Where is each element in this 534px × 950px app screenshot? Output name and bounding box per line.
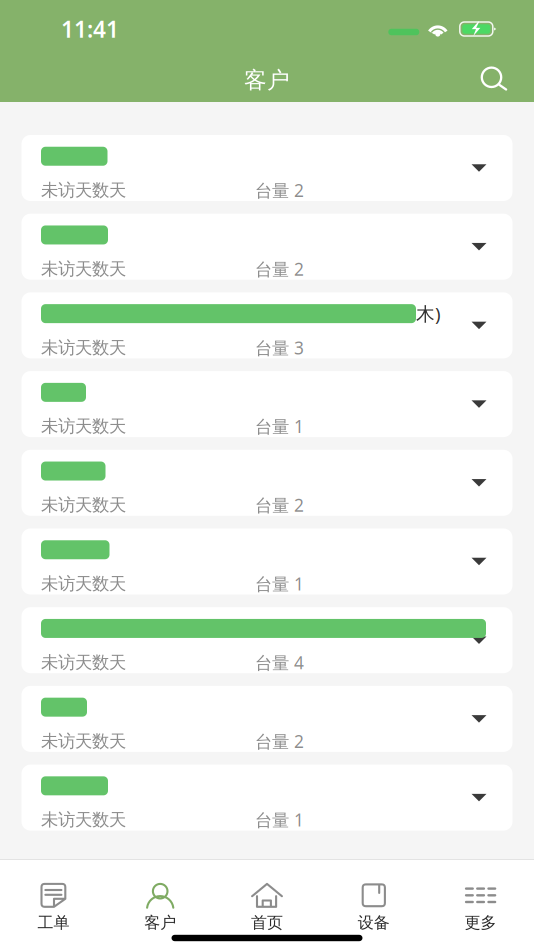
button[interactable]: 未访天数天 <box>21 528 512 594</box>
button[interactable]: 未访天数天 <box>21 607 512 673</box>
button[interactable]: 木) <box>21 292 512 358</box>
button[interactable]: 未访天数天 <box>21 686 512 752</box>
staticText: 台量 2 <box>255 179 304 202</box>
staticText: 更多 <box>465 913 497 932</box>
staticText: 台量 2 <box>255 730 304 753</box>
button[interactable]: 未访天数天 <box>21 135 512 201</box>
button[interactable]: 客户 <box>107 883 214 932</box>
staticText: 未访天数天 <box>41 730 126 752</box>
staticText: 未访天数天 <box>41 652 126 673</box>
button[interactable]: 设备 <box>320 883 427 932</box>
button[interactable]: 首页 <box>214 883 320 932</box>
staticText: 客户 <box>244 66 290 94</box>
staticText: 台量 3 <box>255 336 304 359</box>
staticText: 未访天数天 <box>41 809 126 830</box>
staticText: 木) <box>416 301 441 326</box>
button[interactable]: 未访天数天 <box>21 371 512 437</box>
staticText: 设备 <box>358 913 390 932</box>
staticText: 客户 <box>144 913 176 932</box>
button[interactable]: 未访天数天 <box>21 214 512 280</box>
staticText: 未访天数天 <box>41 573 126 594</box>
staticText: 台量 1 <box>255 572 304 595</box>
staticText: 台量 2 <box>255 257 304 280</box>
staticText: 未访天数天 <box>41 337 126 358</box>
button[interactable]: 工单 <box>0 883 107 932</box>
staticText: 未访天数天 <box>41 180 126 201</box>
staticText: 首页 <box>251 913 283 932</box>
staticText: 工单 <box>37 913 69 932</box>
staticText: 台量 1 <box>255 415 304 438</box>
staticText: 未访天数天 <box>41 258 126 280</box>
button[interactable]: 搜索 <box>468 59 520 100</box>
button[interactable]: 未访天数天 <box>21 450 512 516</box>
staticText: 未访天数天 <box>41 494 126 516</box>
staticText: 未访天数天 <box>41 416 126 437</box>
staticText: 台量 1 <box>255 808 304 831</box>
staticText: 台量 4 <box>255 651 304 674</box>
staticText: 台量 2 <box>255 493 304 516</box>
button[interactable]: 更多 <box>427 883 534 932</box>
staticText: 11:41 <box>61 14 119 44</box>
button[interactable]: 未访天数天 <box>21 765 512 831</box>
